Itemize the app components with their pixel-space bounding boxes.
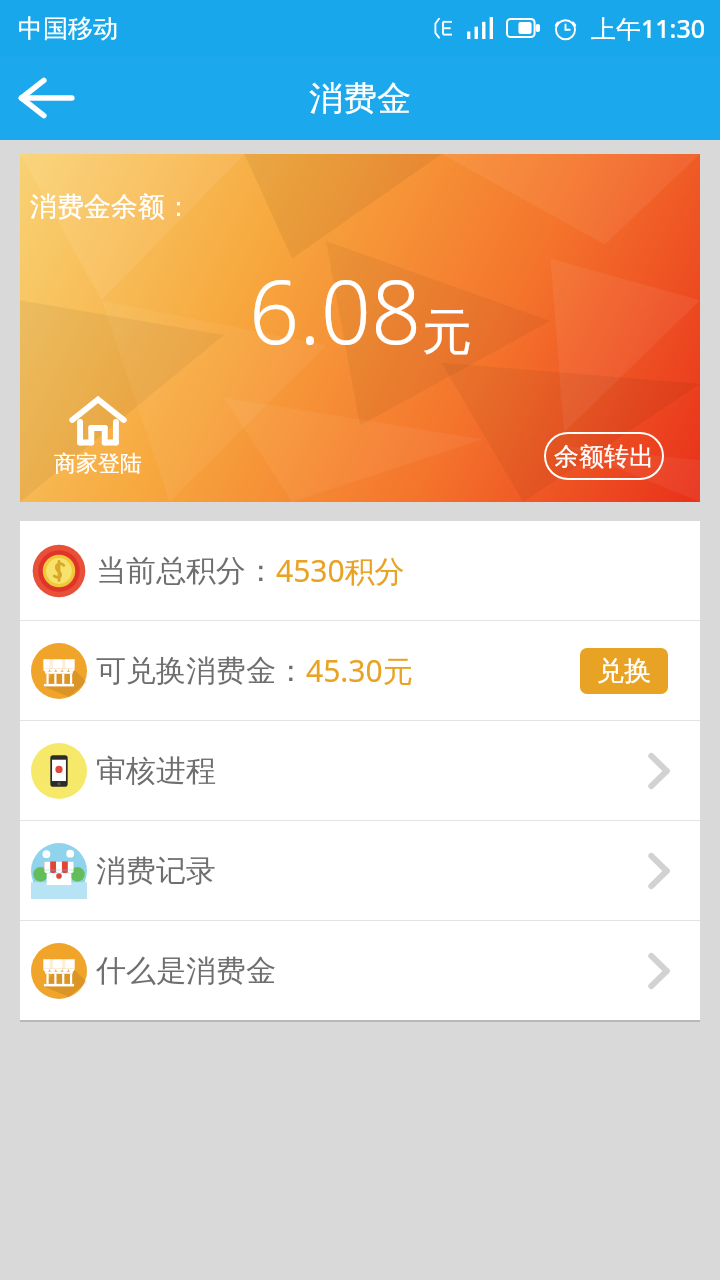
staticText: 消费金 [309,77,411,120]
button[interactable]: 消费金余额： [20,154,700,502]
staticText: 余额转出 [554,441,654,472]
button[interactable]: 可兑换消费金： [20,621,700,720]
button[interactable]: Back [10,63,80,133]
staticText: 中国移动 [18,13,118,44]
button[interactable]: 兑换 [580,648,668,694]
staticText: 6.08 [249,250,422,370]
staticText: 什么是消费金 [96,952,276,990]
staticText: 上午11:30 [591,11,706,45]
staticText: 商家登陆 [54,450,142,478]
staticText: 可兑换消费金： [96,652,306,690]
button[interactable]: 余额转出 [542,430,666,482]
staticText: 兑换 [597,654,651,688]
button[interactable]: 什么是消费金 [20,921,700,1020]
staticText: 审核进程 [96,752,216,790]
button[interactable]: 审核进程 [20,721,700,820]
button[interactable]: 消费记录 [20,821,700,920]
staticText: 45.30元 [306,650,413,691]
button[interactable]: 商家登陆 [54,396,142,478]
staticText: 当前总积分： [96,552,276,590]
button[interactable]: 当前总积分： [20,521,700,620]
staticText: 4530积分 [276,550,405,591]
staticText: 消费记录 [96,852,216,890]
staticText: 元 [422,301,472,364]
staticText: 消费金余额： [30,190,192,224]
